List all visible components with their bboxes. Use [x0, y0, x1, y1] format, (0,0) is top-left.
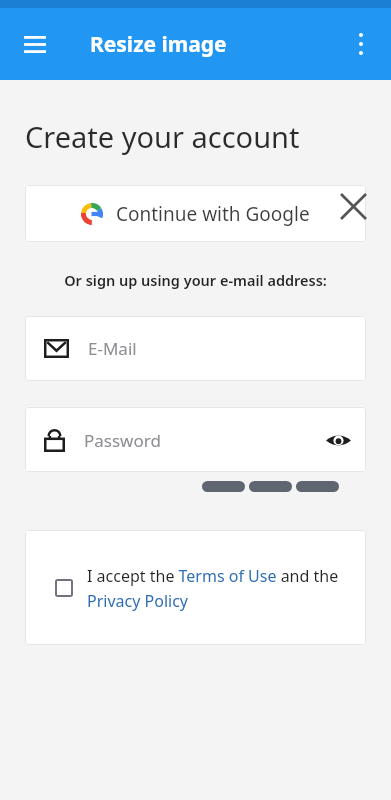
button[interactable]: Suggestion: [296, 481, 339, 492]
button[interactable]: More options: [339, 22, 383, 66]
staticText: Create your account: [25, 117, 300, 156]
button[interactable]: Suggestion: [202, 481, 245, 492]
button[interactable]: I accept the Terms of Use and the Privac…: [25, 530, 366, 645]
button[interactable]: Show password: [318, 420, 358, 460]
staticText: I accept the Terms of Use and the Privac…: [87, 565, 344, 611]
staticText: Continue with Google: [116, 201, 310, 227]
button[interactable]: Close: [331, 184, 375, 228]
button[interactable]: E-Mail: [25, 316, 366, 381]
button[interactable]: Open navigation menu: [13, 22, 57, 66]
button[interactable]: Suggestion: [249, 481, 292, 492]
staticText: E-Mail: [88, 337, 137, 360]
staticText: Password: [84, 429, 161, 452]
staticText: Or sign up using your e-mail address:: [0, 270, 391, 290]
staticText: Resize image: [90, 30, 227, 59]
button[interactable]: Password: [25, 407, 366, 472]
button[interactable]: Continue with Google: [25, 185, 366, 242]
